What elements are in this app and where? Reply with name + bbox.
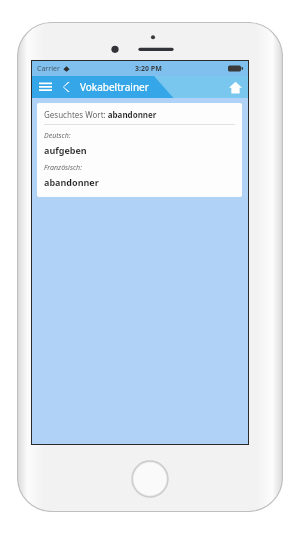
- staticText: aufgeben: [44, 144, 87, 156]
- button[interactable]: Back: [58, 76, 76, 98]
- staticText: Vokabeltrainer: [80, 80, 149, 94]
- staticText: abandonner: [44, 176, 99, 188]
- staticText: Carrier: [37, 64, 60, 74]
- button[interactable]: Menu: [32, 76, 58, 98]
- staticText: Französisch:: [44, 163, 82, 173]
- button[interactable]: Gesuchtes Wort: abandonner: [37, 103, 242, 197]
- button[interactable]: Home: [222, 76, 248, 98]
- staticText: 3:20 PM: [135, 64, 162, 74]
- staticText: Gesuchtes Wort: abandonner: [44, 109, 157, 120]
- staticText: Deutsch:: [44, 131, 71, 141]
